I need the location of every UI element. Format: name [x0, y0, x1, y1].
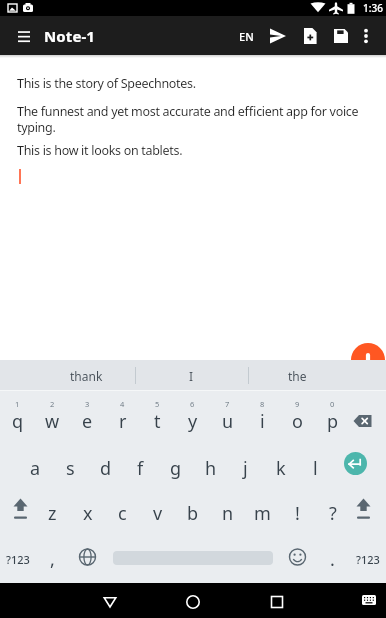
- button[interactable]: o: [280, 391, 315, 439]
- staticText: h: [205, 456, 217, 481]
- button[interactable]: [0, 487, 35, 535]
- staticText: 1: [15, 399, 20, 409]
- staticText: I: [189, 368, 194, 384]
- button[interactable]: a: [18, 439, 53, 487]
- button[interactable]: [264, 22, 292, 50]
- button[interactable]: [356, 583, 386, 618]
- staticText: t: [154, 409, 161, 434]
- button[interactable]: b: [175, 487, 210, 535]
- staticText: j: [243, 456, 248, 481]
- button[interactable]: thank: [46, 360, 126, 391]
- staticText: 6: [190, 399, 195, 409]
- button[interactable]: .: [315, 535, 350, 583]
- button[interactable]: w: [35, 391, 70, 439]
- button[interactable]: [70, 535, 105, 583]
- staticText: o: [292, 409, 303, 434]
- staticText: ,: [50, 547, 55, 572]
- button[interactable]: s: [53, 439, 88, 487]
- staticText: u: [222, 409, 234, 434]
- button[interactable]: I: [151, 360, 231, 391]
- staticText: l: [313, 456, 318, 481]
- button[interactable]: [351, 343, 385, 377]
- staticText: Note-1: [44, 26, 96, 46]
- button[interactable]: q: [0, 391, 35, 439]
- button[interactable]: ?: [315, 487, 350, 535]
- staticText: r: [119, 409, 127, 434]
- staticText: z: [48, 501, 57, 526]
- button[interactable]: [350, 487, 385, 535]
- button[interactable]: i: [245, 391, 280, 439]
- button[interactable]: [353, 22, 379, 50]
- button[interactable]: e: [70, 391, 105, 439]
- staticText: 3: [85, 399, 90, 409]
- button[interactable]: j: [228, 439, 263, 487]
- staticText: y: [188, 409, 198, 434]
- button[interactable]: the: [257, 360, 337, 391]
- button[interactable]: EN: [232, 22, 260, 50]
- button[interactable]: [88, 583, 132, 618]
- staticText: ?: [329, 501, 337, 526]
- button[interactable]: [333, 439, 386, 487]
- button[interactable]: [280, 535, 315, 583]
- staticText: the: [288, 368, 307, 384]
- staticText: c: [118, 501, 127, 526]
- staticText: d: [100, 456, 112, 481]
- button[interactable]: n: [210, 487, 245, 535]
- staticText: The funnest and yet most accurate and ef…: [17, 103, 359, 136]
- staticText: e: [82, 409, 93, 434]
- button[interactable]: !: [280, 487, 315, 535]
- button[interactable]: ,: [35, 535, 70, 583]
- staticText: This is how it looks on tablets.: [17, 142, 183, 159]
- button[interactable]: [171, 583, 215, 618]
- staticText: ?123: [356, 552, 380, 567]
- staticText: n: [222, 501, 234, 526]
- staticText: m: [254, 501, 271, 526]
- staticText: ?123: [6, 552, 30, 567]
- button[interactable]: h: [193, 439, 228, 487]
- button[interactable]: v: [140, 487, 175, 535]
- staticText: b: [187, 501, 199, 526]
- button[interactable]: f: [123, 439, 158, 487]
- button[interactable]: k: [263, 439, 298, 487]
- staticText: a: [30, 456, 41, 481]
- button[interactable]: l: [298, 439, 333, 487]
- staticText: 9: [295, 399, 300, 409]
- button[interactable]: ?123: [350, 535, 385, 583]
- button[interactable]: d: [88, 439, 123, 487]
- button[interactable]: x: [70, 487, 105, 535]
- staticText: .: [330, 547, 335, 572]
- staticText: f: [137, 456, 144, 481]
- button[interactable]: [350, 391, 385, 439]
- staticText: p: [327, 409, 339, 434]
- button[interactable]: r: [105, 391, 140, 439]
- staticText: !: [295, 501, 300, 526]
- staticText: 8: [260, 399, 265, 409]
- staticText: k: [276, 456, 286, 481]
- button[interactable]: [327, 22, 355, 50]
- staticText: w: [45, 409, 60, 434]
- button[interactable]: z: [35, 487, 70, 535]
- staticText: i: [260, 409, 265, 434]
- button[interactable]: [105, 535, 280, 583]
- staticText: 7: [225, 399, 230, 409]
- staticText: 5: [155, 399, 160, 409]
- staticText: 2: [50, 399, 55, 409]
- button[interactable]: ?123: [0, 535, 35, 583]
- staticText: 0: [330, 399, 335, 409]
- staticText: This is the story of Speechnotes.: [17, 75, 196, 92]
- button[interactable]: t: [140, 391, 175, 439]
- button[interactable]: u: [210, 391, 245, 439]
- button[interactable]: [10, 22, 38, 50]
- button[interactable]: y: [175, 391, 210, 439]
- staticText: 4: [120, 399, 125, 409]
- staticText: x: [83, 501, 93, 526]
- button[interactable]: m: [245, 487, 280, 535]
- button[interactable]: [255, 583, 299, 618]
- button[interactable]: g: [158, 439, 193, 487]
- staticText: s: [66, 456, 75, 481]
- button[interactable]: [296, 22, 324, 50]
- button[interactable]: c: [105, 487, 140, 535]
- staticText: EN: [239, 29, 254, 44]
- button[interactable]: p: [315, 391, 350, 439]
- staticText: q: [12, 409, 24, 434]
